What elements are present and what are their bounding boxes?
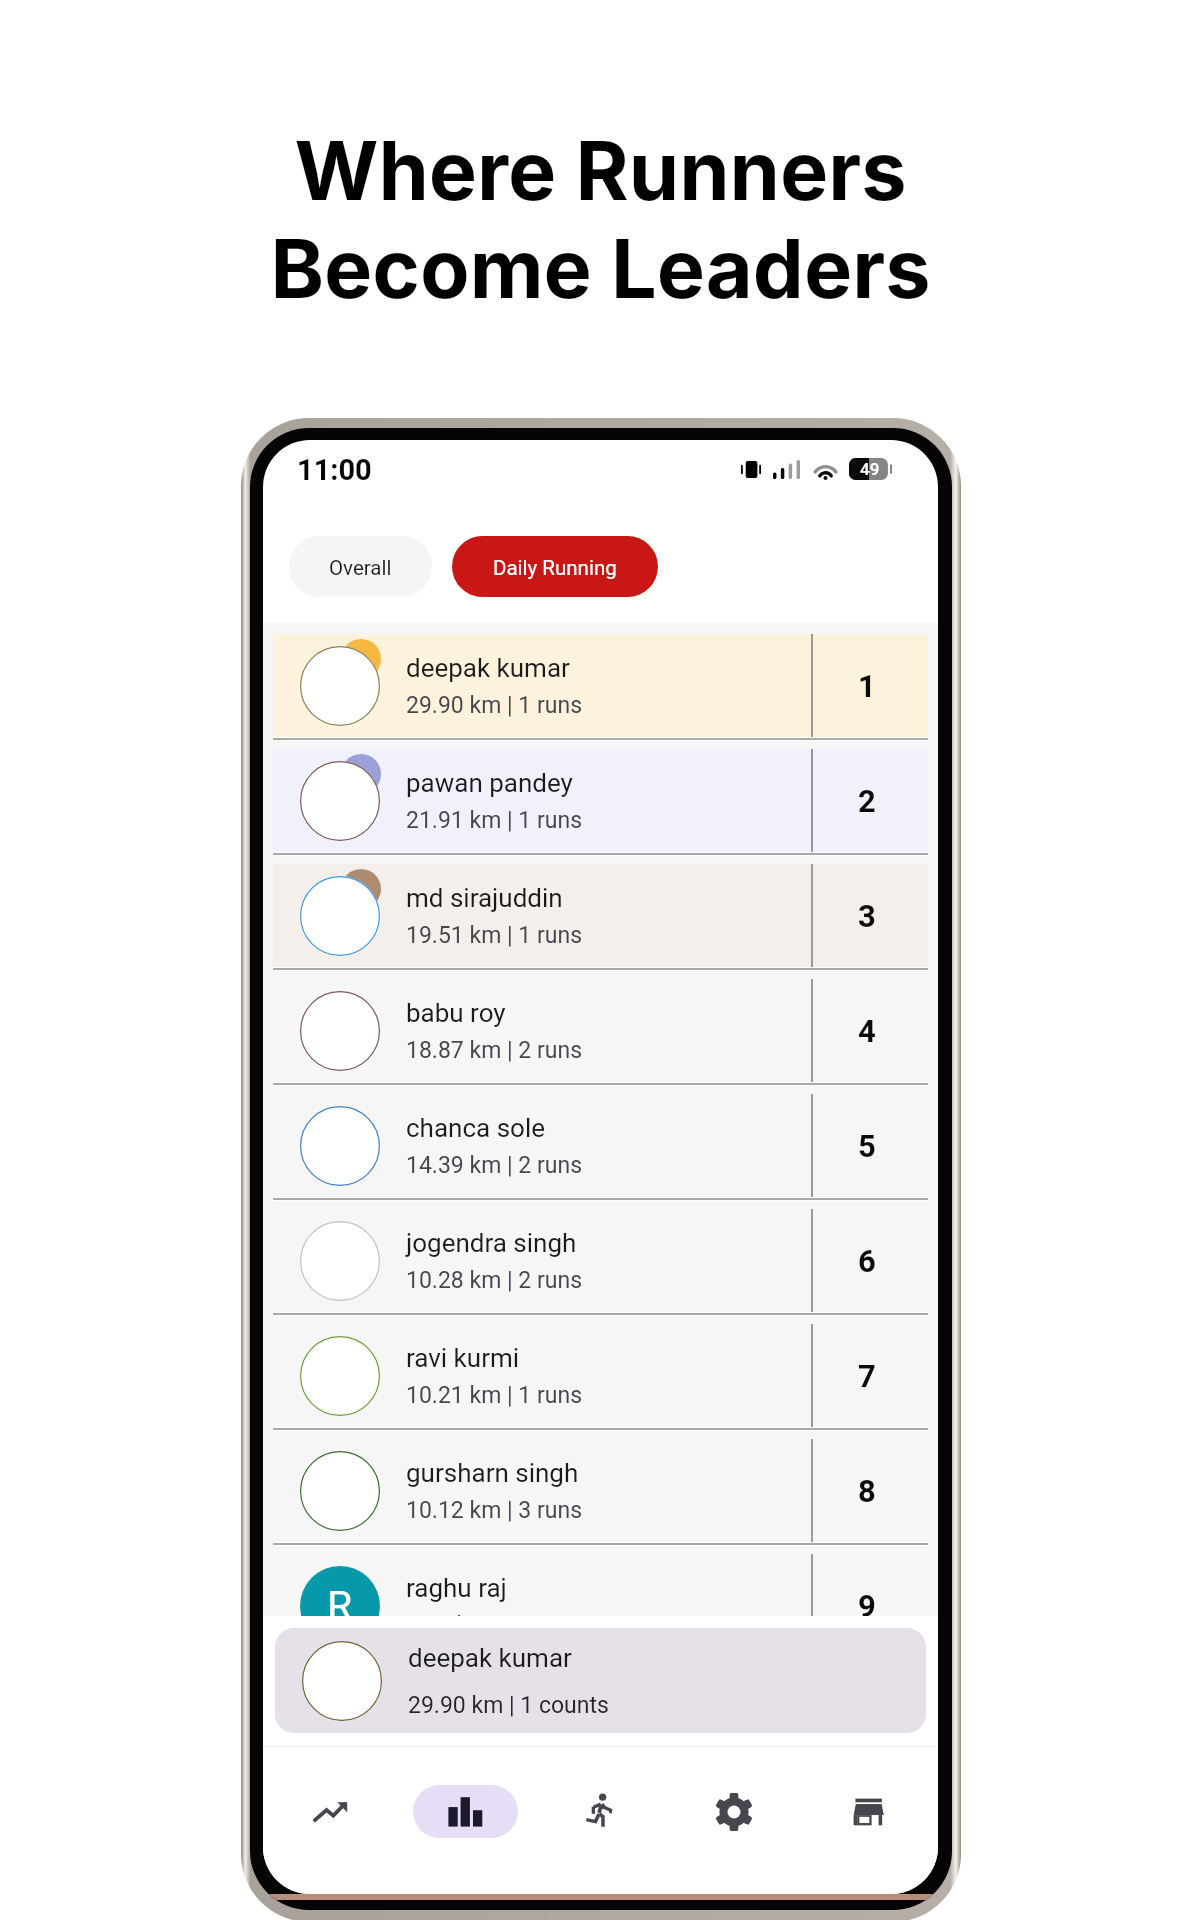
- staticText: 4: [858, 1013, 876, 1049]
- button[interactable]: Store: [815, 1785, 920, 1838]
- staticText: babu roy: [406, 998, 506, 1028]
- button[interactable]: Trends: [279, 1785, 384, 1838]
- button[interactable]: chanca sole: [273, 1094, 928, 1197]
- staticText: 9: [858, 1588, 876, 1624]
- staticText: 2: [858, 783, 876, 819]
- staticText: 10.21 km | 1 runs: [406, 1382, 583, 1409]
- staticText: raghu raj: [406, 1573, 507, 1603]
- staticText: 8: [858, 1473, 876, 1509]
- button[interactable]: Settings: [681, 1785, 786, 1838]
- staticText: 49: [860, 459, 880, 479]
- button[interactable]: gursharn singh: [273, 1439, 928, 1542]
- staticText: 29.90 km | 1 counts: [408, 1692, 609, 1719]
- button[interactable]: deepak kumar: [275, 1628, 926, 1733]
- staticText: gursharn singh: [406, 1458, 579, 1488]
- staticText: 11:00: [297, 453, 372, 487]
- button[interactable]: md sirajuddin: [273, 864, 928, 967]
- staticText: deepak kumar: [406, 653, 570, 683]
- staticText: pawan pandey: [406, 768, 573, 798]
- button[interactable]: jogendra singh: [273, 1209, 928, 1312]
- staticText: 14.39 km | 2 runs: [406, 1152, 583, 1179]
- staticText: 9.80 km | 1 runs: [406, 1612, 570, 1639]
- button[interactable]: Overall: [289, 536, 432, 597]
- staticText: 21.91 km | 1 runs: [406, 807, 583, 834]
- staticText: 5: [858, 1128, 876, 1164]
- staticText: 18.87 km | 2 runs: [406, 1037, 583, 1064]
- button[interactable]: Statistics: [413, 1785, 518, 1838]
- staticText: ravi kurmi: [406, 1343, 520, 1373]
- button[interactable]: Activity: [547, 1785, 652, 1838]
- staticText: 29.90 km | 1 runs: [406, 692, 583, 719]
- button[interactable]: babu roy: [273, 979, 928, 1082]
- staticText: R: [327, 1582, 353, 1630]
- button[interactable]: deepak kumar: [273, 634, 928, 737]
- button[interactable]: R: [273, 1554, 928, 1657]
- staticText: Become Leaders: [270, 220, 931, 318]
- button[interactable]: Daily Running: [452, 536, 658, 597]
- button[interactable]: pawan pandey: [273, 749, 928, 852]
- staticText: md sirajuddin: [406, 883, 563, 913]
- staticText: Daily Running: [493, 556, 617, 580]
- staticText: 10.28 km | 2 runs: [406, 1267, 583, 1294]
- staticText: 19.51 km | 1 runs: [406, 922, 583, 949]
- staticText: Where Runners: [294, 122, 907, 220]
- staticText: 6: [858, 1243, 876, 1279]
- staticText: 10.12 km | 3 runs: [406, 1497, 583, 1524]
- staticText: 7: [858, 1358, 876, 1394]
- staticText: 3: [858, 898, 876, 934]
- staticText: deepak kumar: [408, 1643, 572, 1673]
- button[interactable]: ravi kurmi: [273, 1324, 928, 1427]
- staticText: jogendra singh: [406, 1228, 577, 1258]
- staticText: Overall: [329, 556, 392, 580]
- staticText: chanca sole: [406, 1113, 545, 1143]
- staticText: 1: [858, 668, 876, 704]
